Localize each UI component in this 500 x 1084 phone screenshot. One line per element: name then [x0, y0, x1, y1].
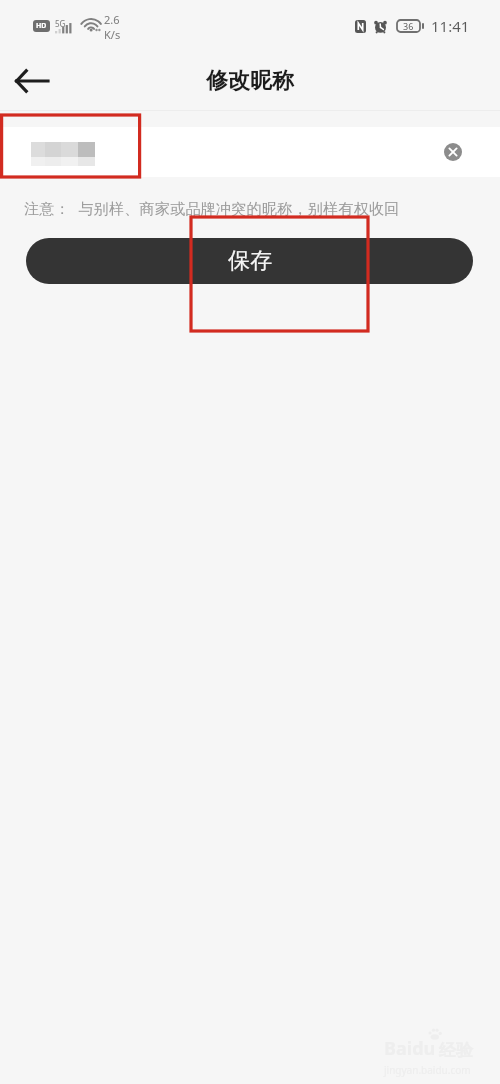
button[interactable]: Back	[7, 56, 57, 106]
staticText: 经验	[439, 1040, 473, 1061]
staticText: 11:41	[431, 16, 470, 36]
staticText: HD	[36, 21, 47, 31]
staticText: 修改昵称	[206, 67, 294, 95]
button[interactable]: Clear text	[436, 135, 470, 169]
button[interactable]: 保存	[26, 238, 473, 284]
staticText: 2.6	[104, 12, 120, 27]
button[interactable]: Clear text	[0, 127, 500, 177]
staticText: 5G	[55, 18, 66, 29]
staticText: Baidu	[384, 1036, 436, 1061]
staticText: 注意： 与别样、商家或品牌冲突的昵称，别样有权收回	[24, 198, 400, 218]
staticText: K/s	[104, 27, 121, 42]
staticText: 36	[403, 20, 414, 32]
staticText: 保存	[228, 247, 272, 275]
